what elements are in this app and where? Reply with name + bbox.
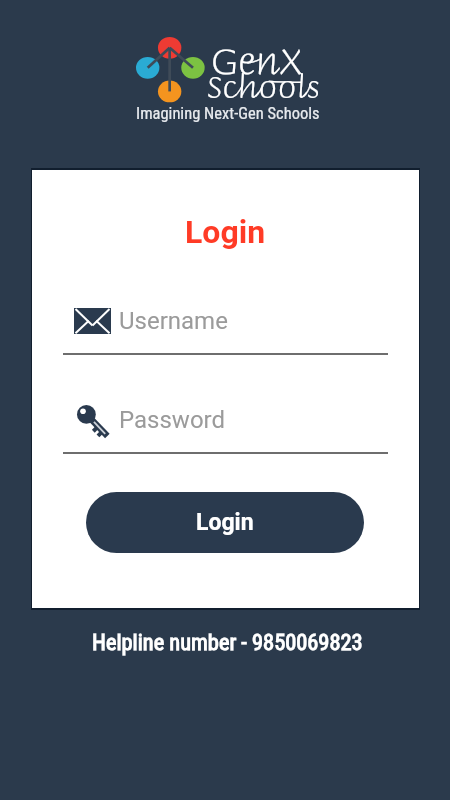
staticText: Login	[185, 213, 266, 251]
staticText: Schools	[206, 58, 320, 108]
staticText: GenX	[211, 28, 303, 85]
staticText: Login	[196, 509, 254, 536]
button[interactable]: Password	[63, 394, 388, 446]
staticText: Password	[119, 406, 226, 434]
other: Password	[76, 404, 109, 437]
other: Username	[74, 308, 111, 334]
button[interactable]: Login	[86, 492, 364, 553]
staticText: Imagining Next-Gen Schools	[136, 104, 320, 123]
staticText: Helpline number - 9850069823	[92, 629, 363, 655]
button[interactable]: Username	[63, 295, 388, 347]
staticText: Username	[119, 307, 228, 335]
